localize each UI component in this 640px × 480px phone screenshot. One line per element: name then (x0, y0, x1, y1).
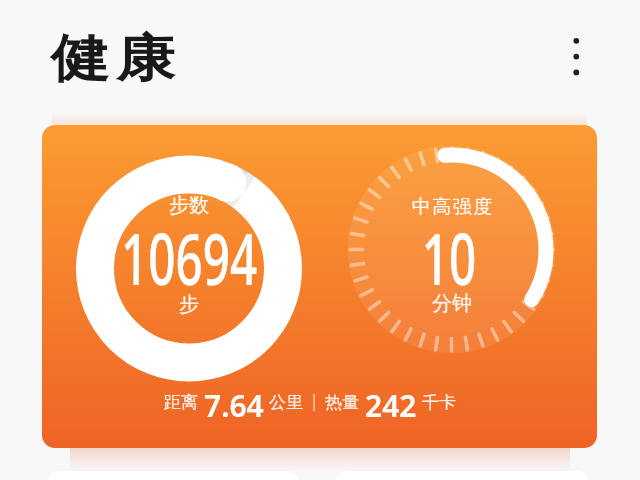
staticText: 步 (179, 292, 199, 317)
staticText: 公里 (269, 392, 303, 413)
staticText: 242 (365, 385, 417, 419)
staticText: 10 (422, 210, 477, 290)
staticText: 7.64 (204, 385, 264, 419)
staticText: 中高强度 (411, 195, 493, 219)
staticText: 千卡 (422, 392, 456, 413)
staticText: 10694 (121, 210, 258, 290)
staticText: 健康 (47, 27, 178, 91)
staticText: 热量 (325, 392, 359, 413)
staticText: 距离 (164, 392, 198, 413)
staticText: 步数 (169, 193, 209, 218)
button[interactable] (560, 25, 593, 89)
button[interactable]: 步数 (42, 125, 597, 448)
staticText: 分钟 (432, 291, 472, 316)
